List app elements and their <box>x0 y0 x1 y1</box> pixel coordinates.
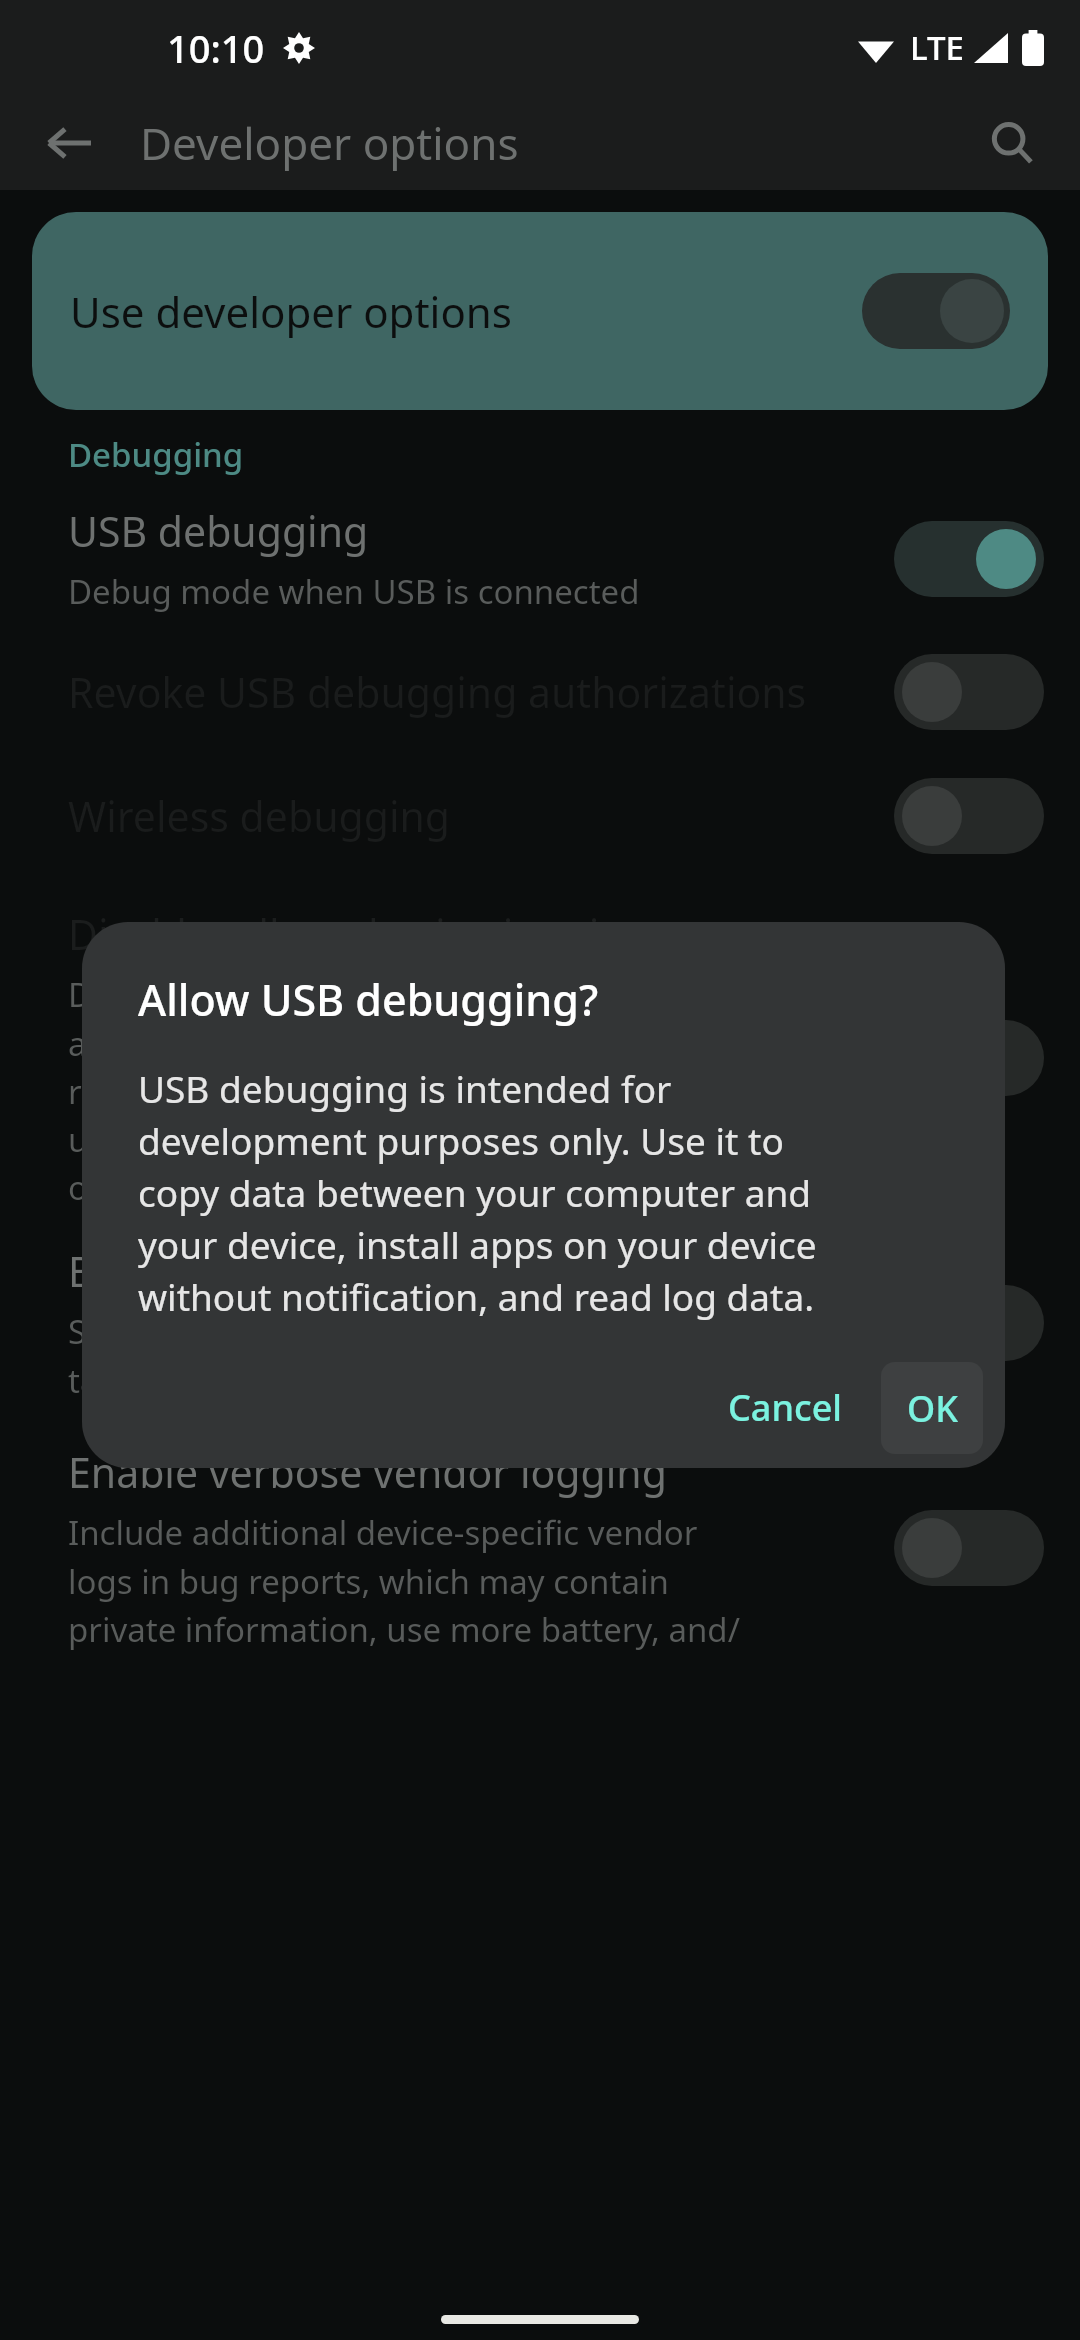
staticText: LTE <box>910 25 964 70</box>
staticText: Disable automatic revocation of adb auth… <box>68 972 717 1209</box>
button[interactable]: Disable adb authorization timeout <box>894 1020 1044 1096</box>
staticText: Wireless debugging <box>68 788 451 844</box>
button[interactable]: Wireless debugging <box>894 778 1044 854</box>
staticText: USB debugging <box>68 503 369 559</box>
staticText: Use developer options <box>70 283 512 340</box>
staticText: Revoke USB debugging authorizations <box>68 664 807 720</box>
staticText: Debug mode when USB is connected <box>68 569 640 614</box>
staticText: Allow USB debugging? <box>138 970 599 1029</box>
button[interactable]: USB debugging <box>0 503 1080 614</box>
button[interactable]: Bug report shortcut <box>894 1285 1044 1361</box>
staticText: OK <box>907 1384 958 1433</box>
button[interactable]: Cancel <box>698 1361 873 1454</box>
button[interactable]: Revoke USB debugging authorizations <box>894 654 1044 730</box>
button[interactable]: Enable verbose vendor logging <box>0 1444 1080 1651</box>
button[interactable]: Bug report shortcut <box>0 1243 1080 1402</box>
staticText: Cancel <box>728 1383 843 1432</box>
button[interactable]: Enable verbose vendor logging <box>894 1510 1044 1586</box>
button[interactable]: Disable adb authorization timeout <box>0 906 1080 1209</box>
staticText: Show a button in the power menu for taki… <box>68 1309 649 1402</box>
staticText: Bug report shortcut <box>68 1243 449 1299</box>
button[interactable]: Revoke USB debugging authorizations <box>0 654 1080 730</box>
button[interactable]: Back <box>30 103 110 183</box>
staticText: Include additional device-specific vendo… <box>68 1510 740 1651</box>
staticText: Disable adb authorization timeout <box>68 906 726 962</box>
staticText: USB debugging is intended for developmen… <box>138 1063 817 1322</box>
button[interactable]: Use developer options <box>32 212 1048 410</box>
button[interactable]: USB debugging <box>894 521 1044 597</box>
staticText: Debugging <box>68 432 244 477</box>
staticText: Enable verbose vendor logging <box>68 1444 667 1500</box>
staticText: 10:10 <box>167 22 265 74</box>
button[interactable]: OK <box>881 1362 983 1454</box>
button[interactable]: Wireless debugging <box>0 778 1080 854</box>
staticText: Developer options <box>140 113 519 173</box>
button[interactable]: Search <box>972 103 1052 183</box>
